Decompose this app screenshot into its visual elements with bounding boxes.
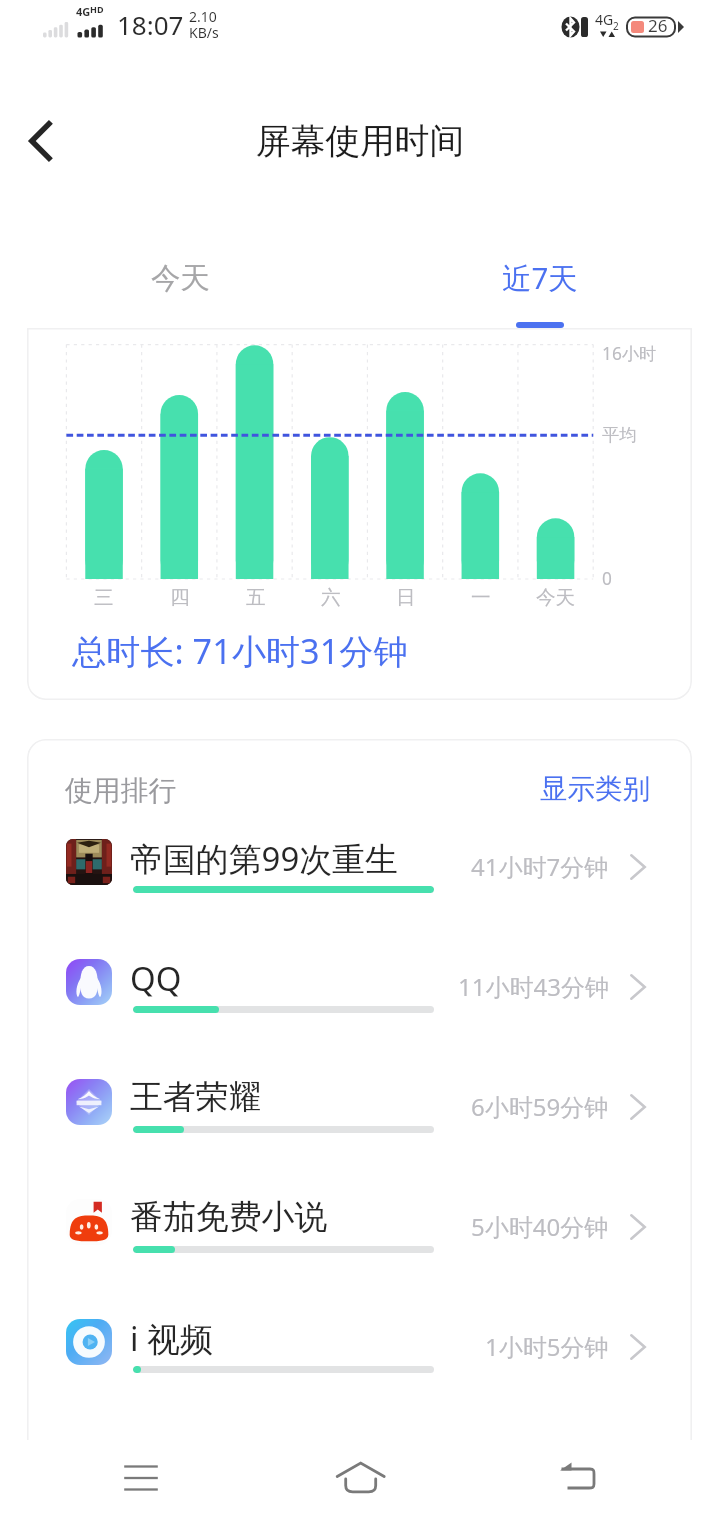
button[interactable]: 王者荣耀 — [27, 1042, 692, 1162]
staticText: 4G — [76, 4, 91, 19]
button[interactable]: 近7天 — [480, 248, 600, 328]
staticText: 4G — [595, 10, 614, 29]
staticText: 王者荣耀 — [130, 1076, 262, 1117]
staticText: 日 — [396, 585, 416, 610]
staticText: 26 — [648, 14, 668, 37]
staticText: 屏幕使用时间 — [0, 119, 720, 163]
staticText: 2 — [613, 19, 619, 33]
staticText: 四 — [170, 585, 190, 610]
button[interactable]: Home — [301, 1438, 421, 1518]
staticText: 六 — [321, 585, 341, 610]
staticText: 今天 — [151, 260, 210, 297]
staticText: 帝国的第99次重生 — [130, 836, 398, 881]
staticText: i 视频 — [130, 1316, 213, 1361]
staticText: 16小时 — [602, 342, 657, 366]
staticText: 五 — [246, 585, 266, 610]
button[interactable]: 帝国的第99次重生 — [27, 802, 692, 922]
staticText: 5小时40分钟 — [471, 1210, 609, 1243]
staticText: 0 — [602, 567, 612, 591]
staticText: 番茄免费小说 — [130, 1196, 328, 1237]
button[interactable]: Recent apps — [81, 1438, 201, 1518]
staticText: 三 — [94, 585, 114, 610]
staticText: QQ — [130, 956, 182, 1001]
button[interactable]: QQ — [27, 922, 692, 1042]
button[interactable]: 番茄免费小说 — [27, 1162, 692, 1282]
staticText: 显示类别 — [540, 772, 650, 807]
staticText: HD — [90, 3, 104, 15]
staticText: KB/s — [189, 23, 219, 42]
staticText: 18:07 — [117, 7, 184, 42]
staticText: 11小时43分钟 — [458, 970, 609, 1003]
staticText: 总时长: 71小时31分钟 — [72, 627, 408, 674]
button[interactable]: Back — [519, 1438, 639, 1518]
staticText: 一 — [471, 585, 491, 610]
button[interactable]: 显示类别 — [527, 767, 662, 811]
staticText: 41小时7分钟 — [471, 850, 609, 883]
staticText: 今天 — [536, 585, 576, 610]
staticText: 使用排行 — [65, 773, 177, 808]
button[interactable]: i 视频 — [27, 1282, 692, 1402]
staticText: 1小时5分钟 — [485, 1330, 609, 1363]
staticText: 6小时59分钟 — [471, 1090, 609, 1123]
button[interactable]: 今天 — [120, 248, 240, 308]
staticText: 平均 — [602, 424, 637, 446]
staticText: 近7天 — [502, 257, 578, 297]
button[interactable]: Back — [12, 108, 78, 174]
staticText: 2.10 — [189, 7, 217, 26]
